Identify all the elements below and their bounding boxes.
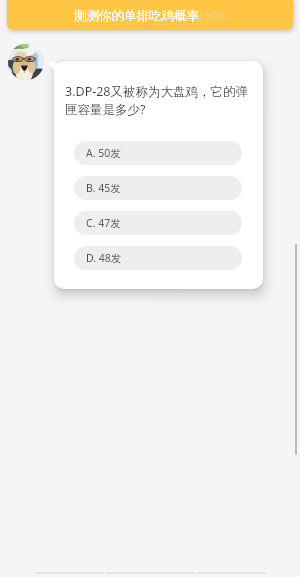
staticText: C. 47发 [86, 216, 121, 230]
staticText: A. 50发 [86, 146, 121, 160]
staticText: D. 48发 [86, 251, 122, 265]
button[interactable]: D. 48发 [74, 246, 242, 270]
button[interactable]: C. 47发 [74, 211, 242, 235]
staticText: 测测你的单排吃鸡概率 [74, 8, 199, 24]
button[interactable]: 测测你的单排吃鸡概率 [7, 0, 293, 30]
staticText: B. 45发 [86, 181, 121, 195]
staticText: 3.DP-28又被称为大盘鸡，它的弹匣容量是多少? [65, 83, 252, 118]
staticText: (3/5) [199, 7, 226, 24]
button[interactable]: A. 50发 [74, 141, 242, 165]
button[interactable]: B. 45发 [74, 176, 242, 200]
